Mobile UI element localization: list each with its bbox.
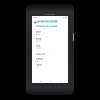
- staticText: ALCATEL: [45, 12, 55, 15]
- button[interactable]: Navigation: [38, 79, 42, 83]
- button[interactable]: [32, 30, 68, 37]
- button[interactable]: [32, 63, 68, 70]
- button[interactable]: [32, 57, 68, 64]
- button[interactable]: Back: [33, 20, 37, 24]
- button[interactable]: [32, 44, 68, 51]
- button[interactable]: Navigation: [48, 79, 52, 83]
- button[interactable]: Navigation: [58, 79, 62, 83]
- button[interactable]: [32, 37, 68, 44]
